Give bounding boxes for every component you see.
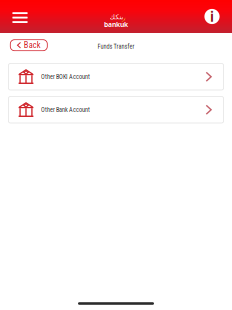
- staticText: Other BOKI Account: [41, 73, 90, 80]
- staticText: بنكك: [109, 13, 123, 21]
- staticText: Back: [24, 40, 41, 50]
- button[interactable]: Other BOKI Account: [8, 63, 224, 90]
- staticText: Funds Transfer: [97, 43, 134, 50]
- staticText: Other Bank Account: [41, 106, 90, 113]
- button[interactable]: Information: [192, 0, 232, 33]
- button[interactable]: Back: [10, 40, 47, 51]
- button[interactable]: Other Bank Account: [8, 96, 224, 123]
- staticText: i: [210, 8, 214, 25]
- staticText: bankuk: [104, 20, 128, 29]
- button[interactable]: Menu: [0, 0, 40, 33]
